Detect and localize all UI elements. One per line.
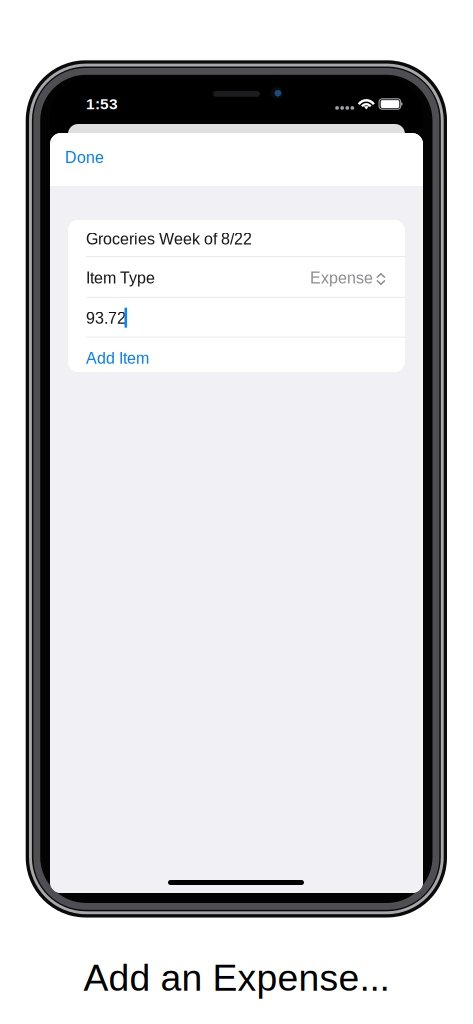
button[interactable]: Add Item bbox=[68, 337, 405, 373]
staticText: Done bbox=[65, 149, 104, 166]
button[interactable]: Item Type bbox=[68, 257, 405, 297]
staticText: Expense bbox=[310, 269, 373, 287]
staticText: Groceries Week of 8/22 bbox=[86, 230, 252, 248]
staticText: Item Type bbox=[86, 269, 155, 287]
staticText: Add Item bbox=[86, 349, 149, 367]
button[interactable]: Done bbox=[50, 133, 170, 186]
staticText: 1:53 bbox=[86, 95, 118, 113]
button[interactable]: Groceries Week of 8/22 bbox=[68, 219, 405, 256]
staticText: Add an Expense... bbox=[83, 957, 389, 999]
button[interactable]: 93.72 bbox=[68, 298, 405, 337]
staticText: 93.72 bbox=[86, 309, 126, 327]
